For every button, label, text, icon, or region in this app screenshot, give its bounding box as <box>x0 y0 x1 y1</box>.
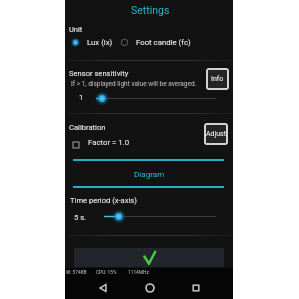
button[interactable]: Adjust <box>204 123 228 145</box>
staticText: 1 <box>79 93 84 102</box>
button[interactable]: Factor = 1.0 <box>70 137 130 148</box>
staticText: Factor = 1.0 <box>88 138 130 147</box>
staticText: W: 5748B <box>66 270 87 276</box>
staticText: If > 1, displayed light value will be av… <box>71 80 197 88</box>
staticText: Info <box>211 75 224 83</box>
button[interactable]: Info <box>206 68 229 90</box>
button[interactable]: Home <box>139 277 160 298</box>
staticText: Sensor sensitivity <box>69 69 129 78</box>
staticText: Time period (x-axis) <box>70 196 137 205</box>
staticText: Diagram <box>134 169 165 178</box>
staticText: Settings <box>131 4 170 16</box>
staticText: Lux (lx) <box>87 38 113 47</box>
staticText: Calibration <box>69 123 106 132</box>
button[interactable]: Lux (lx) <box>70 37 117 48</box>
staticText: 1114MHz <box>128 270 149 276</box>
button[interactable]: Recent apps <box>185 277 206 298</box>
staticText: CPU: 15% <box>96 270 117 276</box>
staticText: Unit <box>69 25 83 34</box>
button[interactable]: Back <box>92 277 113 298</box>
staticText: Adjust <box>206 130 226 138</box>
staticText: 5 s. <box>74 213 87 222</box>
button[interactable]: Foot candle (fc) <box>119 37 190 48</box>
staticText: Foot candle (fc) <box>136 38 191 47</box>
